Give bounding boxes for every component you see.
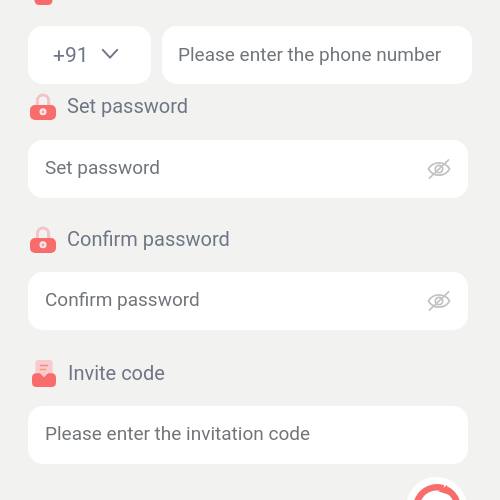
button[interactable]: Show password xyxy=(424,154,454,184)
staticText: Confirm password xyxy=(45,288,200,310)
button[interactable]: Please enter the phone number xyxy=(162,26,472,84)
button[interactable]: Show password xyxy=(424,286,454,316)
staticText: +91 xyxy=(53,43,89,68)
button[interactable]: Confirm password xyxy=(28,272,468,330)
staticText: Set password xyxy=(67,94,189,117)
staticText: Please enter the invitation code xyxy=(45,422,311,444)
button[interactable]: +91 xyxy=(28,26,151,84)
staticText: Set password xyxy=(45,156,160,178)
button[interactable]: Please enter the invitation code xyxy=(28,406,468,464)
staticText: Please enter the phone number xyxy=(178,43,442,65)
button[interactable]: Submit xyxy=(406,477,467,500)
staticText: Invite code xyxy=(68,361,165,384)
staticText: Confirm password xyxy=(67,227,230,250)
button[interactable]: Set password xyxy=(28,140,468,198)
